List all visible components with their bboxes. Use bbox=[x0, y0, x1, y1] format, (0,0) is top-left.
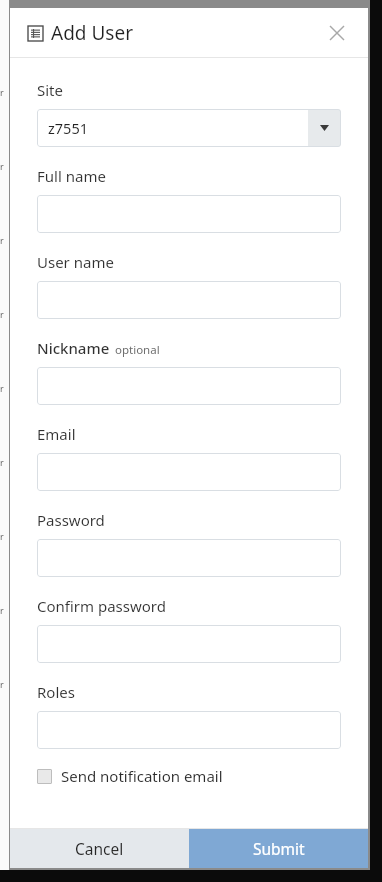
staticText: r bbox=[0, 604, 4, 616]
button[interactable]: Submit bbox=[189, 829, 368, 868]
button[interactable] bbox=[37, 625, 341, 663]
staticText: Cancel bbox=[75, 838, 124, 859]
staticText: User name bbox=[37, 252, 114, 272]
staticText: Add User bbox=[51, 20, 134, 46]
button[interactable]: z7551 bbox=[37, 109, 341, 147]
staticText: r bbox=[0, 456, 4, 468]
button[interactable] bbox=[37, 711, 341, 749]
staticText: Confirm password bbox=[37, 596, 166, 616]
staticText: Roles bbox=[37, 682, 75, 702]
staticText: r bbox=[0, 86, 4, 98]
staticText: r bbox=[0, 160, 4, 172]
staticText: Site bbox=[37, 80, 63, 100]
staticText: r bbox=[0, 382, 4, 394]
staticText: r bbox=[0, 234, 4, 246]
button[interactable]: Send notification email bbox=[37, 766, 223, 786]
staticText: Nickname bbox=[37, 338, 110, 358]
staticText: z7551 bbox=[48, 118, 88, 138]
staticText: Password bbox=[37, 510, 105, 530]
staticText: r bbox=[0, 530, 4, 542]
staticText: r bbox=[0, 308, 4, 320]
button[interactable] bbox=[37, 195, 341, 233]
staticText: Email bbox=[37, 424, 76, 444]
staticText: Full name bbox=[37, 166, 106, 186]
button[interactable] bbox=[37, 539, 341, 577]
staticText: Submit bbox=[253, 838, 305, 859]
staticText: optional bbox=[115, 342, 160, 358]
button[interactable] bbox=[37, 453, 341, 491]
button[interactable]: Add User bbox=[28, 20, 134, 46]
button[interactable] bbox=[37, 281, 341, 319]
button[interactable]: Close bbox=[324, 20, 350, 46]
button[interactable]: Cancel bbox=[10, 829, 189, 868]
staticText: r bbox=[0, 678, 4, 690]
staticText: Send notification email bbox=[61, 766, 223, 786]
button[interactable] bbox=[37, 367, 341, 405]
